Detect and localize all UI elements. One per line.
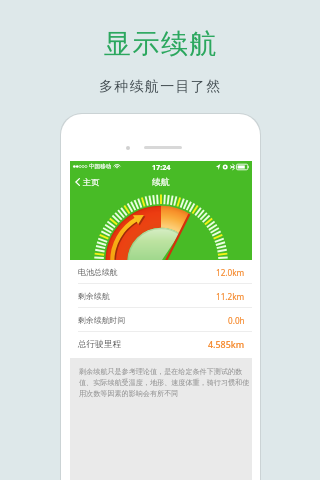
staticText: 续航 <box>152 177 170 188</box>
staticText: 中国移动 <box>89 163 112 170</box>
button[interactable]: 剩余续航时间 <box>70 308 252 332</box>
staticText: 显示续航 <box>103 27 217 61</box>
button[interactable]: 电池总续航 <box>70 260 252 284</box>
staticText: 剩余续航时间 <box>78 315 126 325</box>
staticText: 总行驶里程 <box>78 339 121 350</box>
staticText: 11.2km <box>216 291 245 302</box>
staticText: 0.0h <box>228 315 245 326</box>
staticText: 12.0km <box>216 267 245 278</box>
button[interactable]: 剩余续航 <box>70 284 252 308</box>
staticText: 17:24 <box>152 162 171 172</box>
button[interactable]: 总行驶里程 <box>70 332 252 356</box>
staticText: 剩余续航只是参考理论值，是在给定条件下测试的数 值、实际续航受温度，地形、速度体… <box>79 367 250 398</box>
button[interactable]: 主页 <box>70 175 108 189</box>
staticText: 主页 <box>83 177 100 187</box>
staticText: 多种续航一目了然 <box>99 78 222 96</box>
staticText: 4.585km <box>208 338 245 350</box>
staticText: 剩余续航 <box>78 291 110 301</box>
staticText: 电池总续航 <box>78 267 118 277</box>
